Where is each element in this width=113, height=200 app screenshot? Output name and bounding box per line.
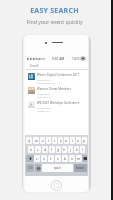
button[interactable]: s bbox=[35, 146, 41, 153]
button[interactable]: q bbox=[26, 137, 32, 144]
staticText: g bbox=[57, 147, 60, 152]
staticText: p bbox=[83, 138, 86, 143]
staticText: Warmer Climat Members Conference bbox=[37, 87, 86, 91]
button[interactable]: u bbox=[64, 137, 69, 144]
staticText: i bbox=[72, 138, 73, 143]
staticText: f bbox=[51, 147, 53, 152]
staticText: Conf bbox=[30, 63, 38, 68]
staticText: a bbox=[30, 147, 32, 152]
button[interactable]: n bbox=[69, 155, 75, 162]
button[interactable]: t bbox=[52, 137, 57, 144]
button[interactable]: p bbox=[82, 137, 87, 144]
button[interactable]: Search bbox=[74, 164, 87, 172]
button[interactable]: r bbox=[46, 137, 51, 144]
staticText: t bbox=[54, 138, 56, 143]
staticText: x bbox=[43, 156, 45, 161]
staticText: 9:41 AM bbox=[52, 57, 65, 61]
staticText: c bbox=[50, 156, 52, 161]
staticText: m bbox=[77, 156, 81, 161]
staticText: 100% bbox=[72, 57, 80, 61]
staticText: Seattle, WA bbox=[37, 109, 50, 112]
button[interactable]: v bbox=[55, 155, 61, 162]
button[interactable]: a bbox=[28, 146, 34, 153]
button[interactable]: f bbox=[49, 146, 55, 153]
staticText: s bbox=[37, 147, 39, 152]
staticText: h bbox=[63, 147, 66, 152]
staticText: Find your event quickly bbox=[26, 18, 83, 25]
button[interactable]: Winter Digital Conference 2017 bbox=[25, 70, 88, 84]
staticText: e bbox=[42, 138, 44, 143]
button[interactable]: z bbox=[34, 155, 40, 162]
button[interactable]: x bbox=[41, 155, 47, 162]
staticText: z bbox=[36, 156, 38, 161]
staticText: b bbox=[64, 156, 67, 161]
button[interactable]: c bbox=[48, 155, 54, 162]
staticText: k bbox=[76, 147, 78, 152]
staticText: WD 2007 Worldtips Conference bbox=[37, 101, 80, 105]
staticText: Search bbox=[76, 166, 85, 170]
button[interactable]: Conf bbox=[25, 61, 88, 69]
button[interactable]: 123 bbox=[26, 164, 34, 172]
staticText: u bbox=[65, 138, 68, 143]
staticText: y bbox=[60, 138, 62, 143]
staticText: r bbox=[48, 138, 50, 143]
button[interactable]: Delete bbox=[82, 155, 87, 162]
button[interactable]: space bbox=[42, 164, 73, 172]
button[interactable]: Warmer Climat Members Conference bbox=[25, 84, 88, 98]
staticText: 22 Dec 2017 bbox=[37, 78, 51, 81]
button[interactable]: h bbox=[62, 146, 67, 153]
staticText: 123 bbox=[28, 166, 33, 170]
button[interactable]: WD 2007 Worldtips Conference bbox=[25, 98, 88, 112]
staticText: d bbox=[44, 147, 47, 152]
staticText: w bbox=[35, 138, 38, 143]
staticText: l bbox=[82, 147, 83, 152]
staticText: Winter Digital Conference 2017 bbox=[37, 73, 80, 77]
staticText: j bbox=[70, 147, 71, 152]
button[interactable]: g bbox=[56, 146, 61, 153]
staticText: v bbox=[57, 156, 59, 161]
staticText: EASY SEARCH bbox=[30, 5, 79, 15]
button[interactable]: Emoji bbox=[35, 164, 41, 172]
button[interactable]: o bbox=[76, 137, 81, 144]
button[interactable]: m bbox=[76, 155, 82, 162]
staticText: 12 Jan 2018 bbox=[37, 92, 50, 95]
button[interactable]: e bbox=[40, 137, 45, 144]
button[interactable]: Shift bbox=[26, 155, 34, 162]
staticText: o bbox=[77, 138, 80, 143]
staticText: n bbox=[71, 156, 74, 161]
button[interactable]: j bbox=[68, 146, 73, 153]
button[interactable]: y bbox=[58, 137, 63, 144]
staticText: Carrier bbox=[35, 57, 46, 61]
staticText: space bbox=[54, 166, 62, 170]
staticText: New York, NY bbox=[37, 95, 52, 98]
staticText: Los Angeles, CA bbox=[37, 81, 55, 84]
button[interactable]: l bbox=[80, 146, 85, 153]
button[interactable]: b bbox=[62, 155, 68, 162]
button[interactable]: k bbox=[74, 146, 79, 153]
staticText: 04 Feb 2018 bbox=[37, 106, 51, 109]
button[interactable]: i bbox=[70, 137, 75, 144]
button[interactable]: d bbox=[42, 146, 48, 153]
button[interactable]: w bbox=[33, 137, 39, 144]
staticText: q bbox=[28, 138, 31, 143]
